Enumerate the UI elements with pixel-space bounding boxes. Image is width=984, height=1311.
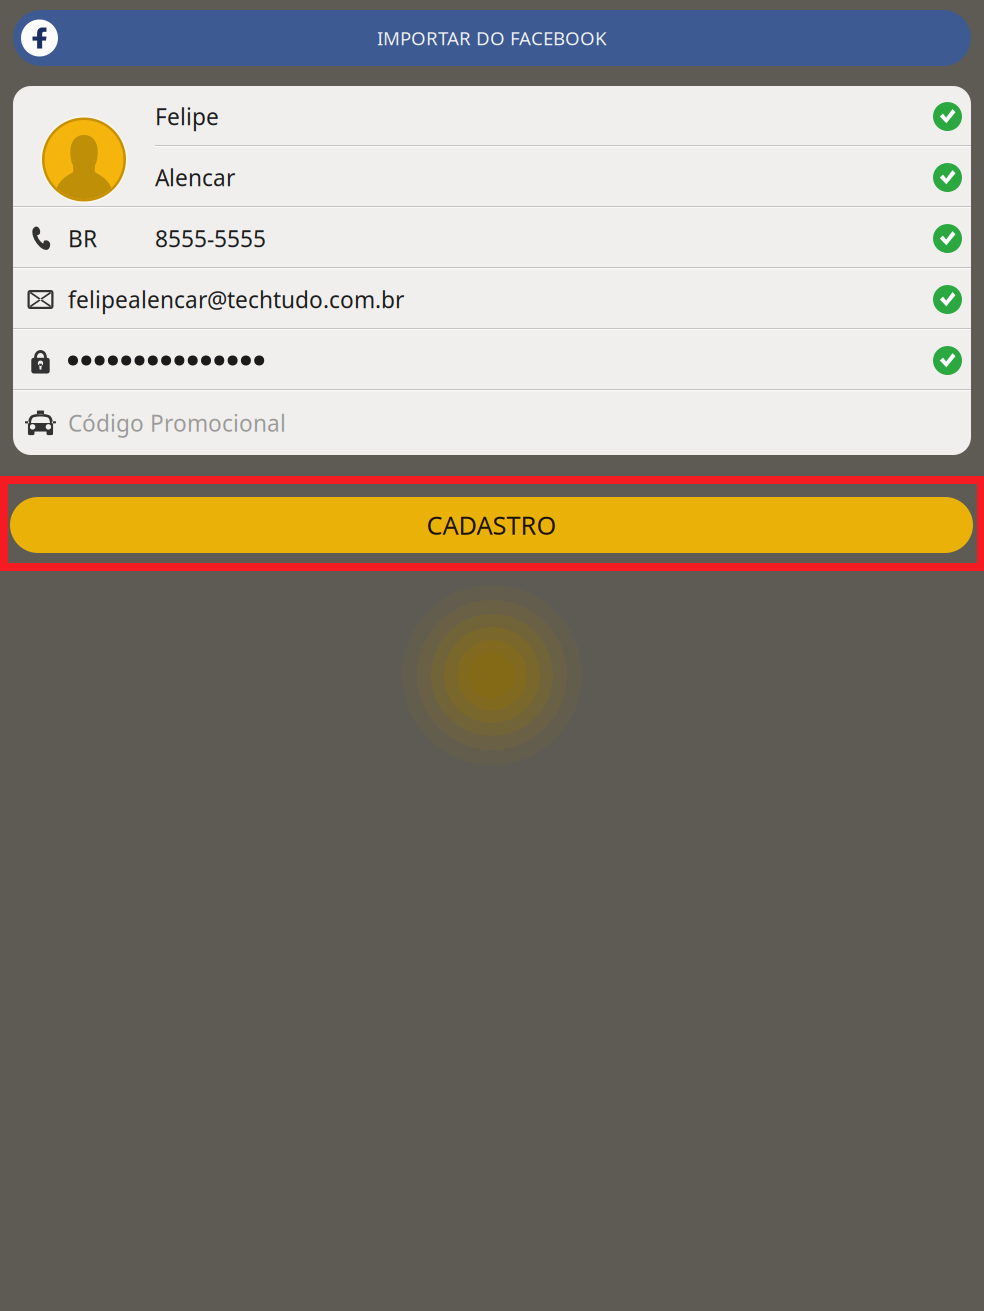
button[interactable]: CADASTRO bbox=[10, 497, 973, 553]
staticText: 8555-5555 bbox=[155, 223, 266, 253]
staticText: Código Promocional bbox=[68, 408, 286, 438]
staticText: IMPORTAR DO FACEBOOK bbox=[377, 26, 607, 50]
staticText: BR bbox=[68, 223, 97, 253]
staticText: felipealencar@techtudo.com.br bbox=[68, 284, 404, 314]
staticText: Felipe bbox=[155, 101, 219, 131]
staticText: Alencar bbox=[155, 162, 235, 192]
staticText: CADASTRO bbox=[426, 508, 556, 542]
button[interactable]: IMPORTAR DO FACEBOOK bbox=[13, 10, 971, 66]
